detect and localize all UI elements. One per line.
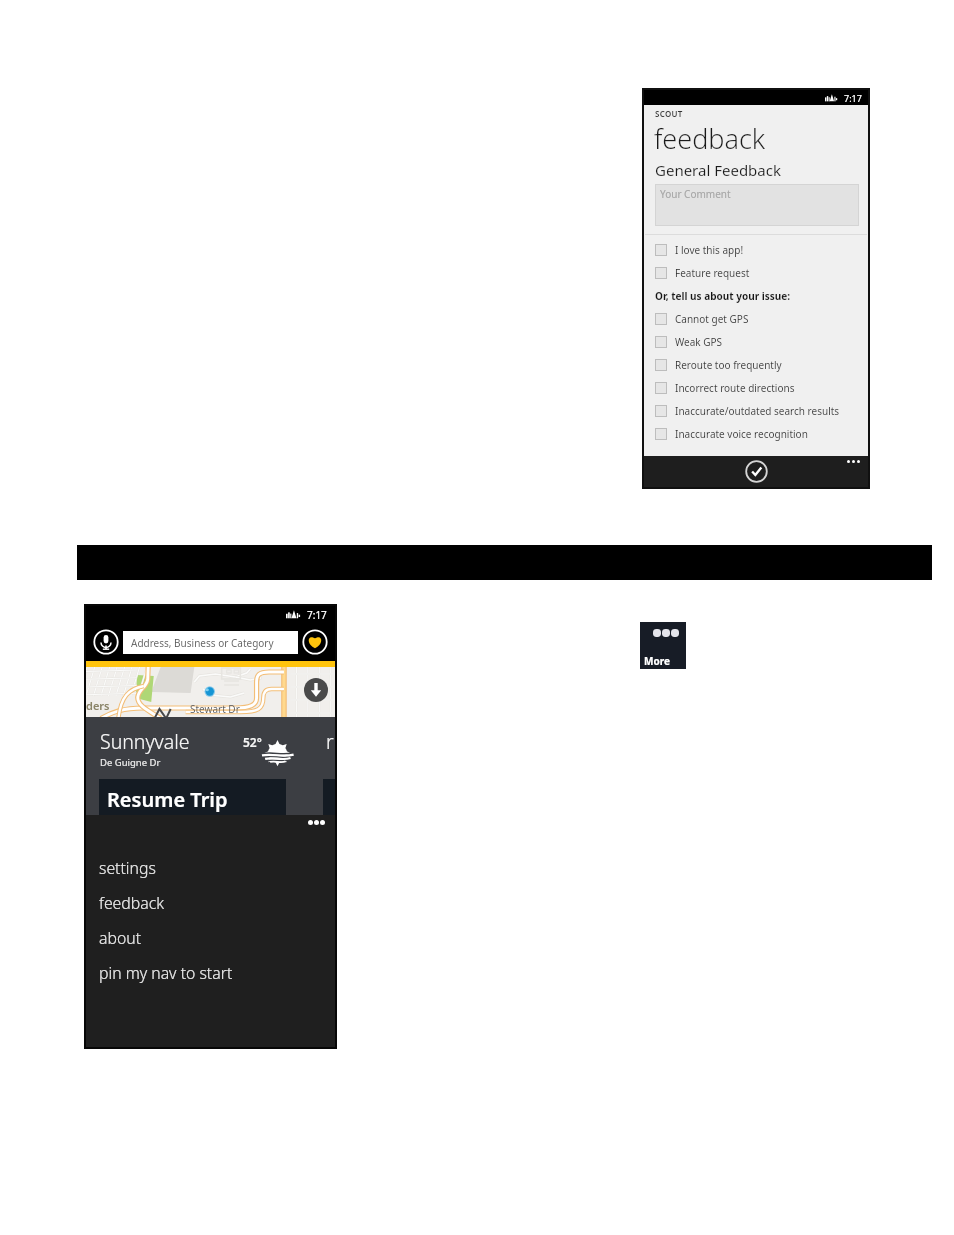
- button[interactable]: More options: [308, 820, 325, 825]
- button[interactable]: pin my nav to start: [86, 955, 335, 990]
- staticText: De Guigne Dr: [100, 756, 161, 769]
- staticText: Address, Business or Category: [131, 636, 274, 650]
- button[interactable]: Map: [86, 667, 335, 717]
- staticText: Reroute too frequently: [675, 358, 782, 372]
- staticText: Cannot get GPS: [675, 312, 749, 326]
- staticText: General Feedback: [655, 160, 781, 180]
- staticText: 52°: [243, 734, 262, 750]
- button[interactable]: Favorites: [302, 629, 328, 655]
- staticText: 7:17: [307, 608, 327, 622]
- button[interactable]: More: [640, 622, 686, 669]
- button[interactable]: Feature request: [644, 261, 868, 284]
- button[interactable]: Incorrect route directions: [644, 376, 868, 399]
- staticText: SCOUT: [655, 108, 683, 119]
- button[interactable]: Resume Trip: [99, 779, 286, 815]
- button[interactable]: feedback: [86, 885, 335, 920]
- staticText: 7:17: [844, 92, 862, 104]
- staticText: Resume Trip: [107, 786, 228, 813]
- staticText: r: [326, 728, 334, 755]
- staticText: Incorrect route directions: [675, 381, 795, 395]
- staticText: Or, tell us about your issue:: [655, 289, 791, 303]
- staticText: about: [99, 927, 142, 949]
- button[interactable]: Reroute too frequently: [644, 353, 868, 376]
- button[interactable]: Sunnyvale: [86, 717, 335, 779]
- button[interactable]: Inaccurate voice recognition: [644, 422, 868, 445]
- button[interactable]: Download map: [304, 678, 328, 702]
- staticText: Weak GPS: [675, 335, 723, 349]
- button[interactable]: Voice search: [93, 629, 119, 655]
- staticText: pin my nav to start: [99, 962, 233, 984]
- button[interactable]: Weak GPS: [644, 330, 868, 353]
- staticText: feedback: [99, 892, 165, 914]
- staticText: More: [644, 654, 670, 668]
- staticText: Stewart Dr: [190, 702, 240, 716]
- staticText: Sunnyvale: [100, 728, 190, 755]
- staticText: settings: [99, 857, 156, 879]
- staticText: Your Comment: [660, 187, 731, 201]
- button[interactable]: Submit: [745, 460, 768, 483]
- button[interactable]: I love this app!: [644, 238, 868, 261]
- staticText: ders: [86, 698, 110, 713]
- staticText: I love this app!: [675, 243, 744, 257]
- staticText: Inaccurate voice recognition: [675, 427, 808, 441]
- button[interactable]: Inaccurate/outdated search results: [644, 399, 868, 422]
- staticText: feedback: [654, 120, 766, 157]
- button[interactable]: about: [86, 920, 335, 955]
- button[interactable]: More options: [847, 460, 860, 463]
- staticText: Inaccurate/outdated search results: [675, 404, 840, 418]
- button[interactable]: settings: [86, 850, 335, 885]
- button[interactable]: Address, Business or Category: [123, 631, 298, 654]
- button[interactable]: Your Comment: [655, 184, 859, 226]
- button[interactable]: Cannot get GPS: [644, 307, 868, 330]
- staticText: Feature request: [675, 266, 750, 280]
